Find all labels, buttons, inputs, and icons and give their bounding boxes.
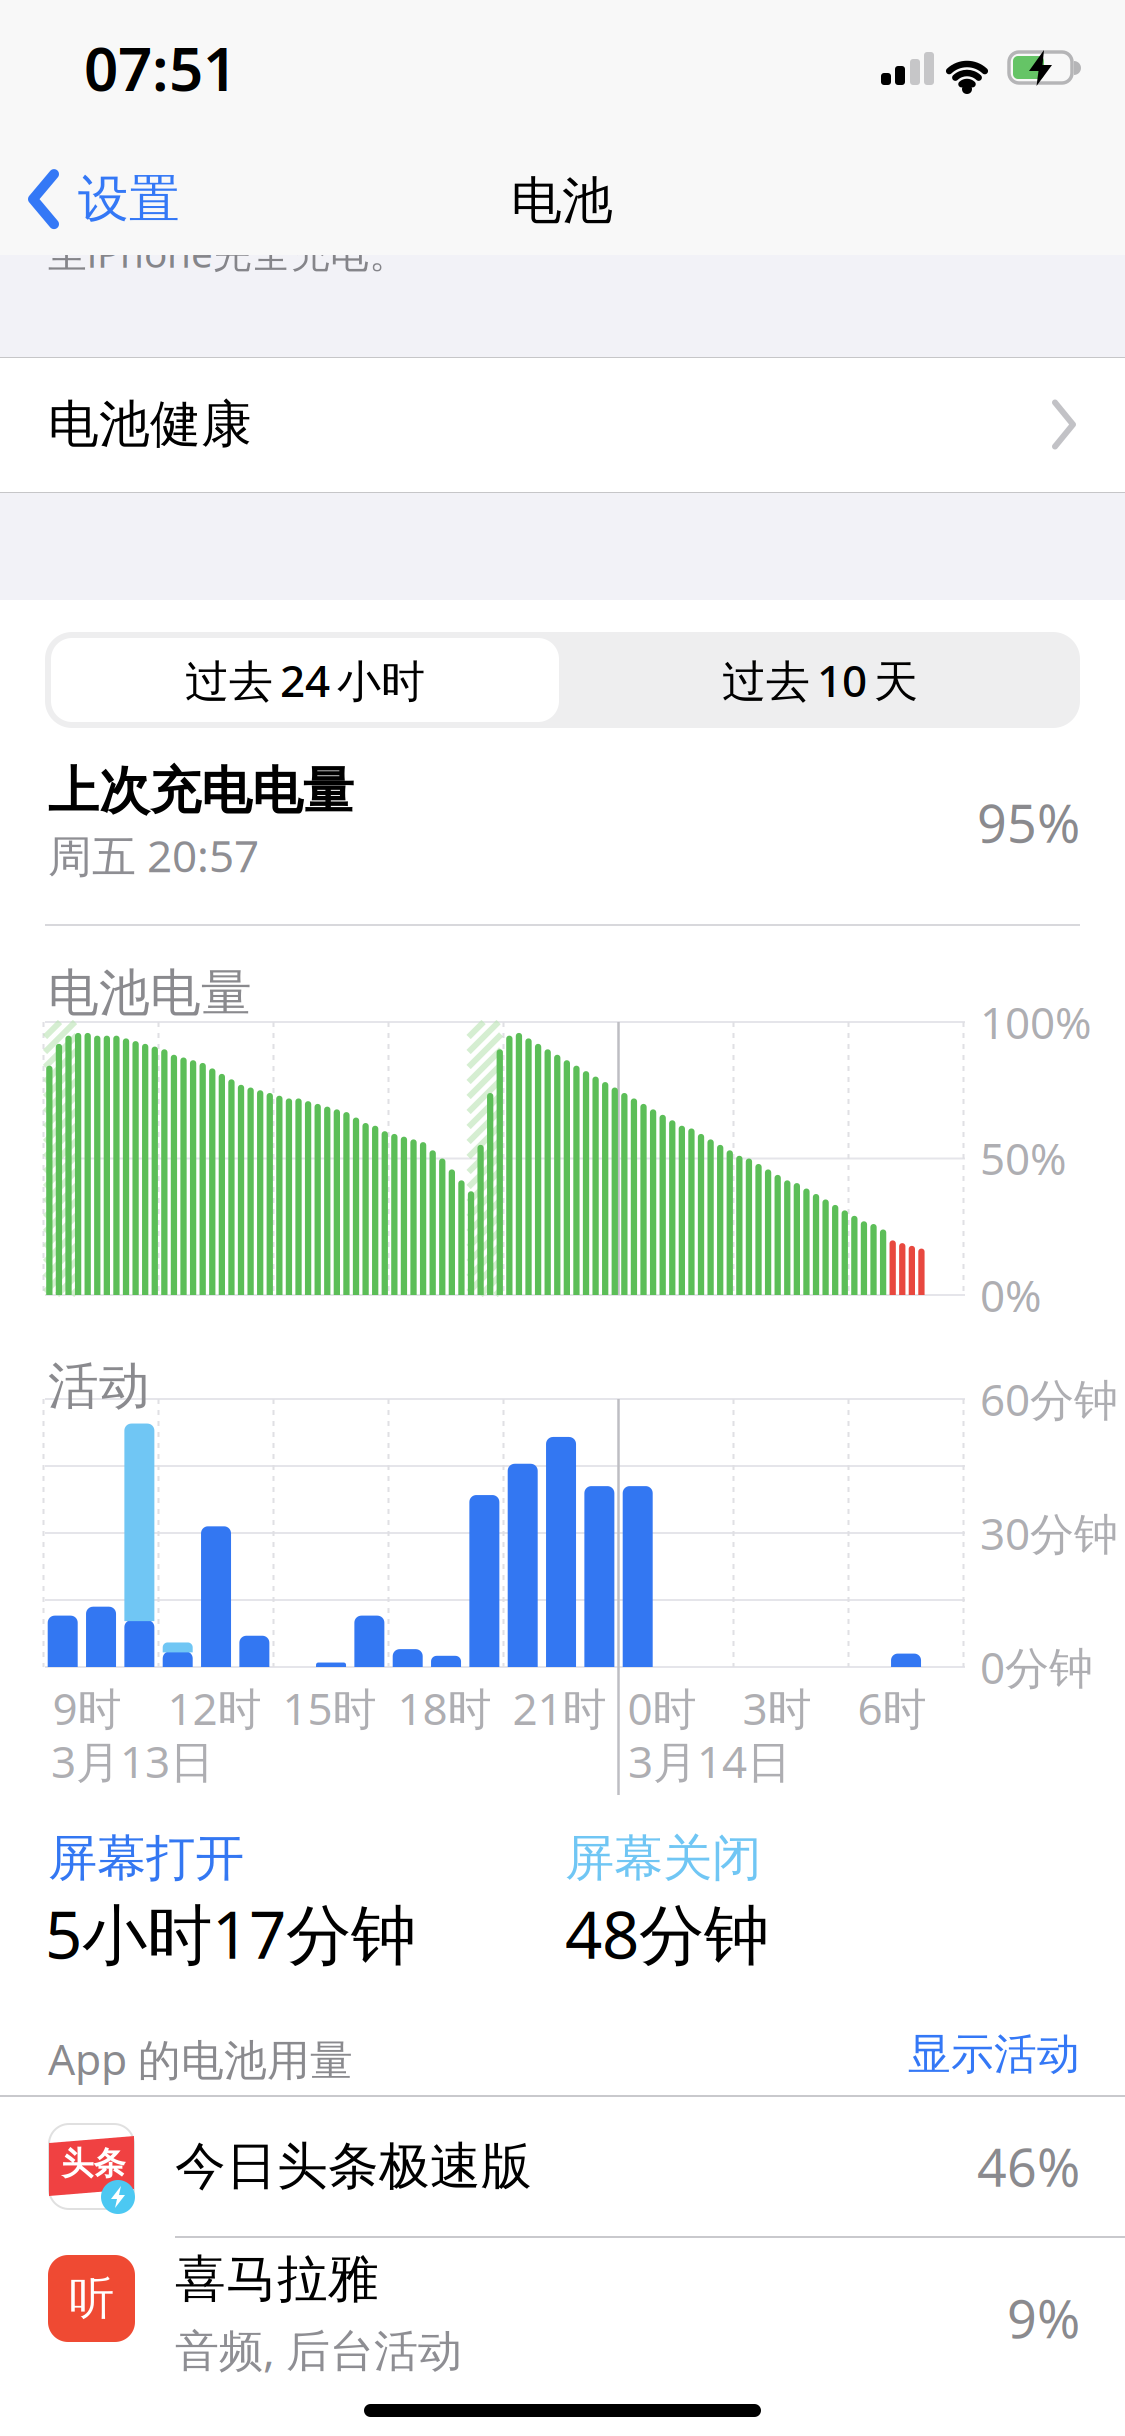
button[interactable]: 过去 24 小时 (51, 638, 559, 722)
staticText: 音频, 后台活动 (175, 2320, 462, 2379)
staticText: 0时 (627, 1679, 696, 1737)
staticText: 电池 (511, 170, 613, 232)
staticText: 12时 (167, 1679, 261, 1737)
staticText: 46% (977, 2132, 1080, 2201)
staticText: 3月14日 (628, 1732, 791, 1790)
staticText: 听 (69, 2271, 114, 2326)
button[interactable]: 电池健康 (0, 359, 1125, 490)
staticText: 3时 (742, 1679, 811, 1737)
button[interactable]: 过去 10 天 (566, 638, 1074, 722)
staticText: 至iPhone完全充电。 (48, 227, 408, 278)
staticText: 屏幕打开 (48, 1828, 244, 1889)
button[interactable]: 显示活动 (908, 2028, 1080, 2080)
staticText: 电池健康 (48, 393, 252, 456)
staticText: 9时 (52, 1679, 121, 1737)
staticText: 活动 (48, 1355, 150, 1417)
staticText: 18时 (397, 1679, 491, 1737)
staticText: 21时 (512, 1679, 606, 1737)
staticText: 50% (980, 1129, 1067, 1187)
staticText: 屏幕关闭 (565, 1828, 761, 1889)
button[interactable]: 听 (0, 2238, 1125, 2436)
staticText: 9% (1007, 2283, 1080, 2353)
staticText: 48分钟 (565, 1890, 769, 1977)
staticText: 15时 (282, 1679, 376, 1737)
staticText: 6时 (857, 1679, 926, 1737)
staticText: 60分钟 (980, 1370, 1118, 1428)
staticText: App 的电池用量 (48, 2030, 353, 2087)
staticText: 上次充电电量 (48, 760, 354, 822)
staticText: 3月13日 (51, 1732, 214, 1790)
staticText: 过去 24 小时 (185, 651, 425, 709)
staticText: 头条 (61, 2144, 125, 2183)
staticText: 喜马拉雅 (175, 2248, 379, 2310)
staticText: 95% (977, 788, 1080, 857)
staticText: 电池电量 (48, 962, 252, 1024)
staticText: 设置 (78, 168, 180, 230)
staticText: 100% (980, 993, 1092, 1051)
staticText: 周五 20:57 (48, 826, 259, 884)
staticText: 显示活动 (908, 2028, 1080, 2080)
staticText: 5小时17分钟 (45, 1890, 416, 1977)
staticText: 0% (980, 1266, 1042, 1324)
staticText: 30分钟 (980, 1504, 1118, 1562)
button[interactable]: 设置 (27, 168, 180, 230)
button[interactable]: 头条 (0, 2097, 1125, 2236)
staticText: 过去 10 天 (722, 651, 918, 709)
staticText: 07:51 (84, 28, 237, 108)
staticText: 0分钟 (980, 1638, 1093, 1696)
staticText: 今日头条极速版 (175, 2135, 532, 2198)
